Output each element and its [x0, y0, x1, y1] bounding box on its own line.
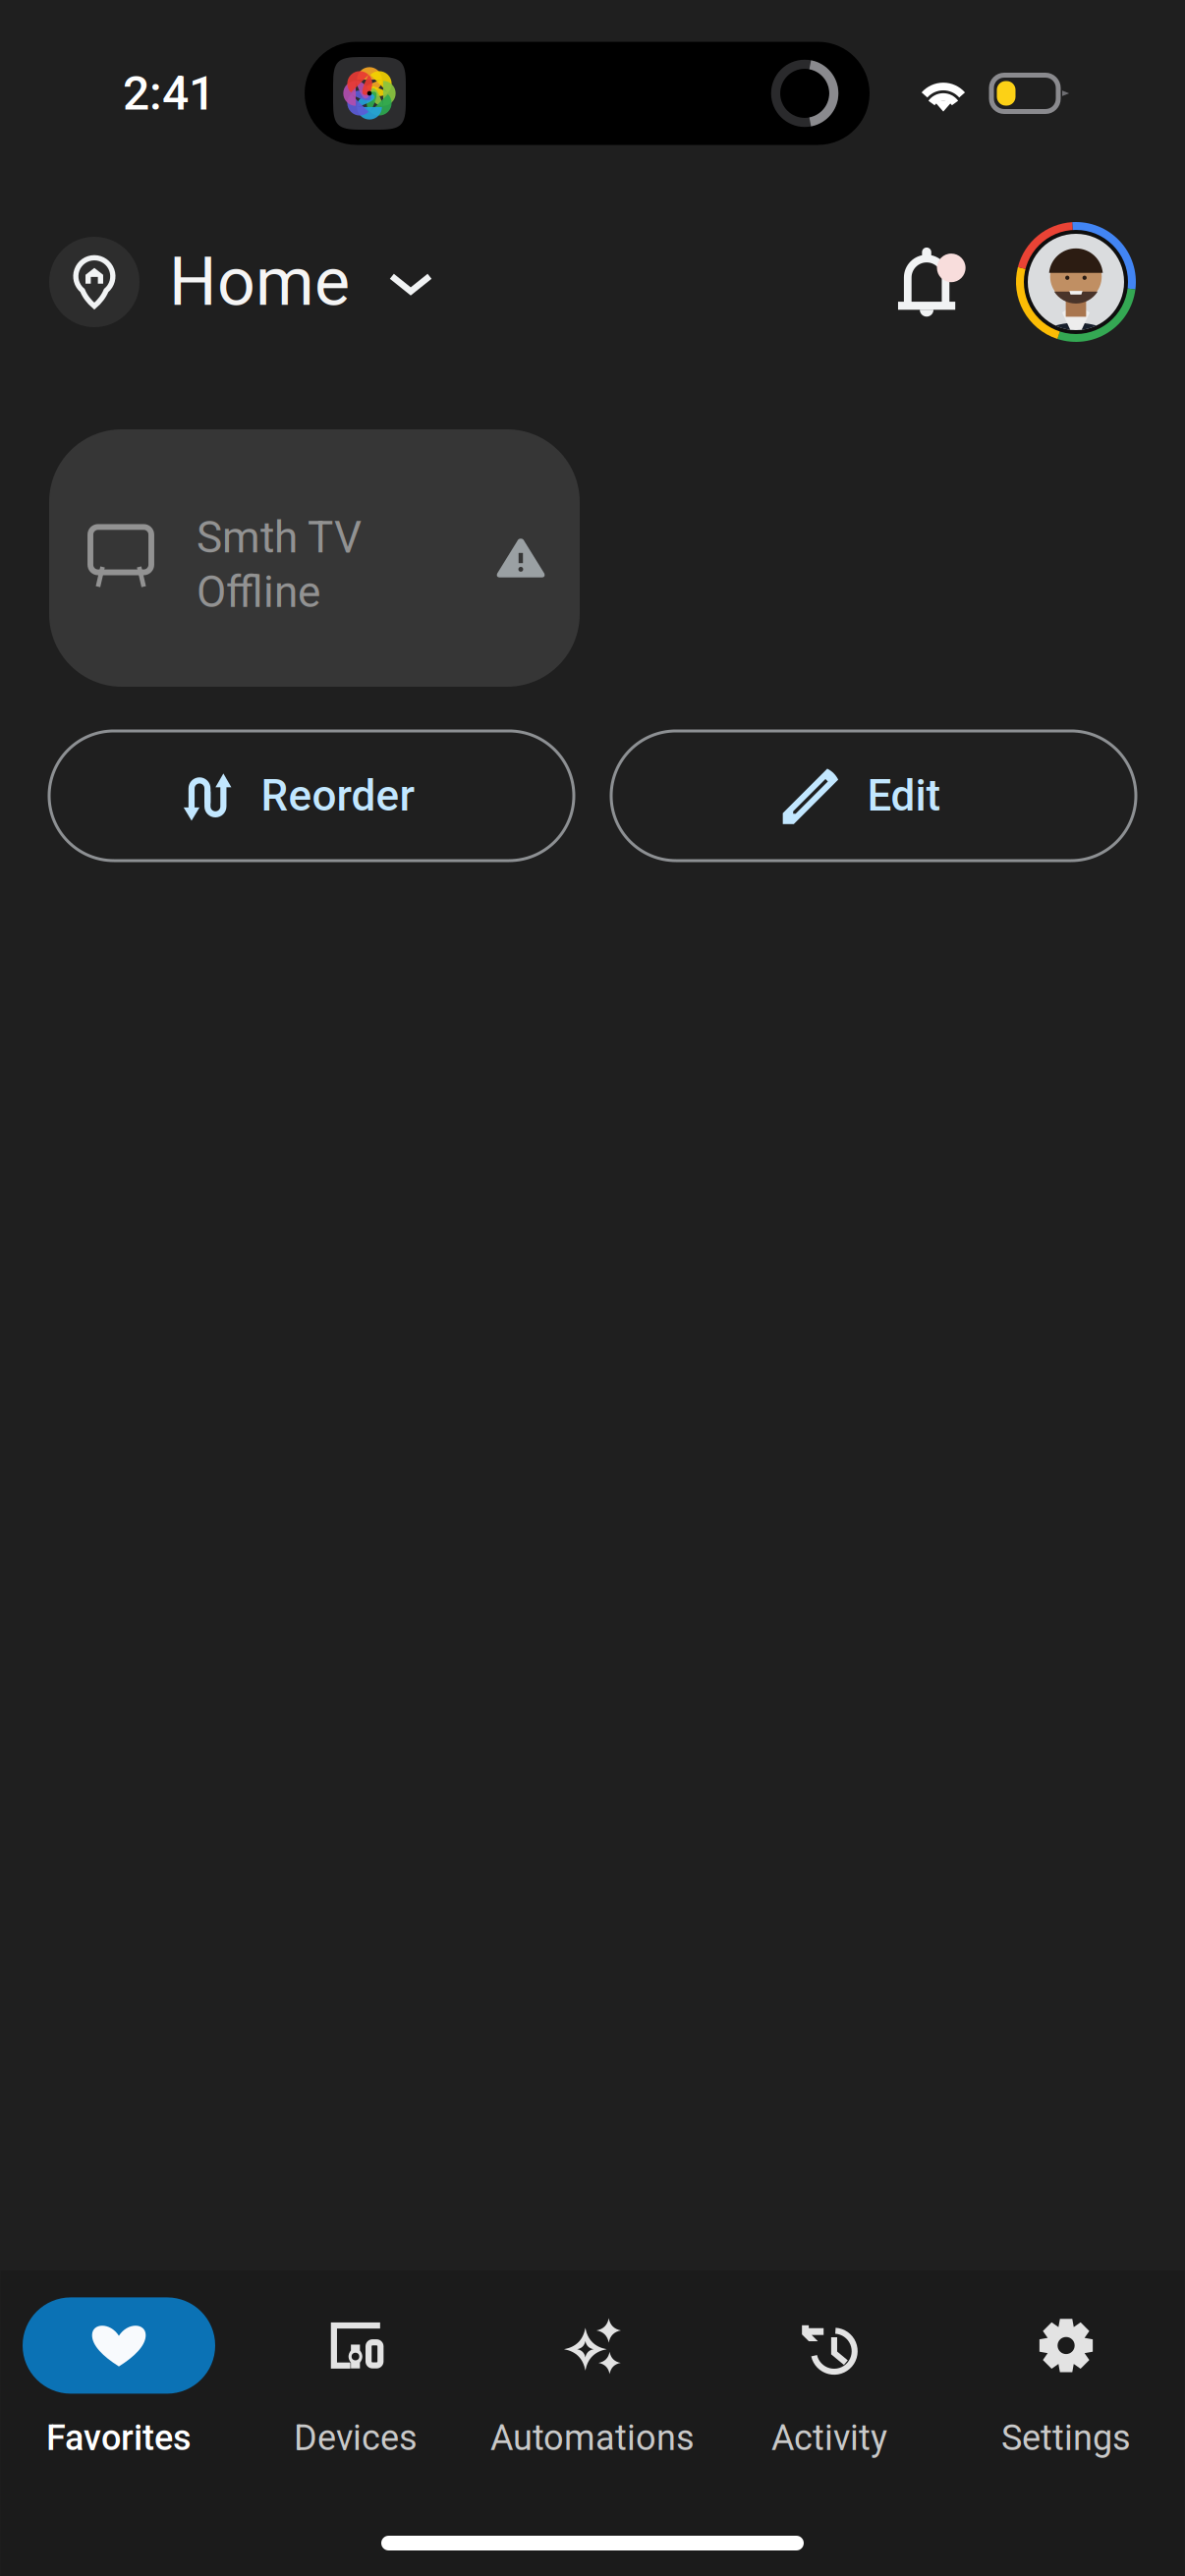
- staticText: Activity: [771, 2417, 887, 2459]
- staticText: Favorites: [46, 2417, 192, 2459]
- button[interactable]: Favorites: [0, 2302, 237, 2454]
- button[interactable]: Account: [1016, 222, 1136, 342]
- staticText: Smth TV: [197, 512, 362, 563]
- staticText: Offline: [197, 567, 320, 618]
- button[interactable]: Automations: [474, 2302, 711, 2454]
- button[interactable]: Settings: [948, 2302, 1185, 2454]
- button[interactable]: Smth TV: [49, 429, 580, 687]
- staticText: Home: [169, 243, 350, 321]
- button[interactable]: Reorder: [49, 731, 574, 861]
- staticText: Edit: [867, 770, 941, 821]
- staticText: Reorder: [261, 770, 415, 821]
- button[interactable]: Devices: [237, 2302, 474, 2454]
- button[interactable]: Notifications: [880, 231, 983, 333]
- staticText: Settings: [1001, 2417, 1131, 2459]
- staticText: Devices: [294, 2417, 418, 2459]
- staticText: Automations: [490, 2417, 695, 2459]
- button[interactable]: Edit: [611, 731, 1136, 861]
- button[interactable]: Activity: [711, 2302, 948, 2454]
- button[interactable]: Home: [49, 237, 434, 327]
- staticText: 2:41: [123, 66, 215, 121]
